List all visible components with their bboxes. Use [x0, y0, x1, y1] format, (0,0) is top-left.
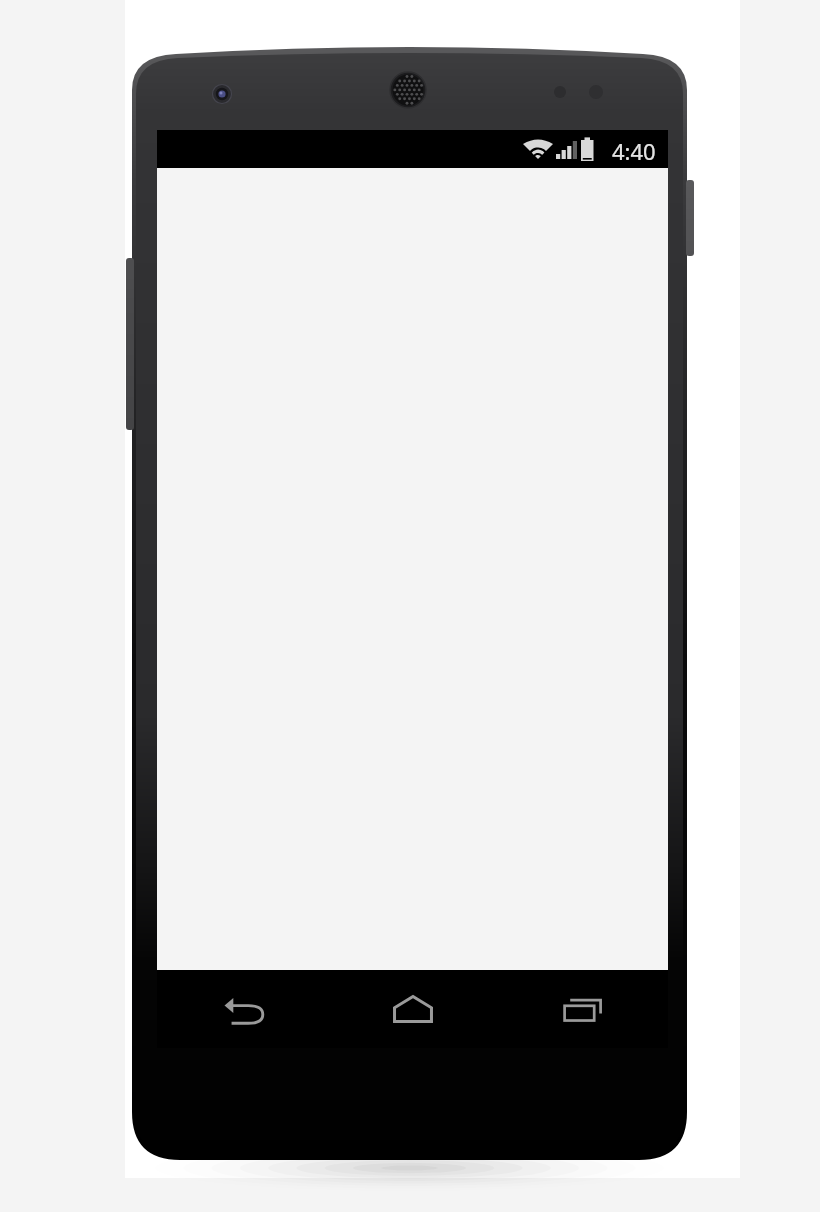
button[interactable]: Back [157, 970, 328, 1048]
button[interactable]: Home [328, 970, 498, 1048]
staticText: 4:40 [612, 136, 656, 162]
button[interactable]: Recent apps [498, 970, 668, 1048]
